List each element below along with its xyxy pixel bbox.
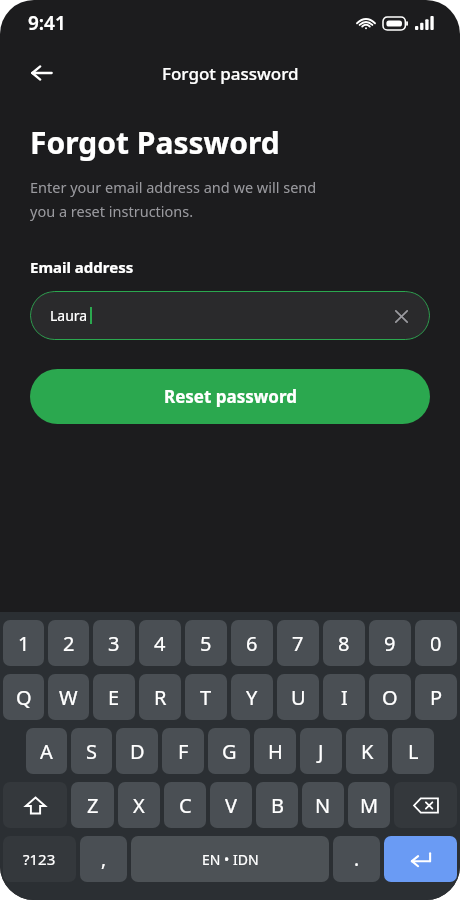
staticText: Y	[246, 684, 258, 711]
button[interactable]: 7	[277, 620, 319, 666]
button[interactable]: E	[93, 674, 135, 720]
staticText: A	[40, 738, 53, 765]
button[interactable]: Back	[20, 51, 64, 95]
button[interactable]: 2	[48, 620, 89, 666]
button[interactable]: Laura	[30, 291, 430, 340]
button[interactable]: H	[254, 728, 296, 774]
staticText: Forgot Password	[30, 122, 280, 163]
button[interactable]: X	[118, 782, 160, 828]
staticText: N	[315, 792, 331, 819]
button[interactable]: 6	[231, 620, 273, 666]
button[interactable]: I	[323, 674, 365, 720]
staticText: B	[271, 792, 284, 819]
staticText: 0	[430, 630, 442, 657]
staticText: ?123	[23, 849, 56, 869]
button[interactable]: J	[300, 728, 342, 774]
staticText: M	[360, 792, 379, 819]
button[interactable]: Shift	[3, 782, 67, 828]
staticText: 6	[246, 630, 258, 657]
staticText: 9:41	[28, 10, 66, 36]
staticText: I	[341, 684, 348, 711]
button[interactable]: D	[116, 728, 158, 774]
button[interactable]: Reset password	[30, 369, 430, 424]
staticText: J	[318, 738, 324, 765]
button[interactable]: T	[185, 674, 227, 720]
button[interactable]: K	[346, 728, 388, 774]
button[interactable]: B	[256, 782, 298, 828]
staticText: T	[200, 684, 212, 711]
staticText: Forgot password	[162, 62, 299, 85]
staticText: Q	[16, 684, 32, 711]
staticText: Z	[87, 792, 99, 819]
staticText: H	[268, 738, 283, 765]
button[interactable]: O	[369, 674, 411, 720]
button[interactable]: ,	[80, 836, 127, 882]
button[interactable]: Y	[231, 674, 273, 720]
button[interactable]: 3	[93, 620, 135, 666]
button[interactable]: U	[277, 674, 319, 720]
button[interactable]: 0	[415, 620, 457, 666]
staticText: 7	[292, 630, 304, 657]
staticText: EN • IDN	[202, 850, 259, 869]
button[interactable]: L	[392, 728, 434, 774]
button[interactable]: A	[26, 728, 67, 774]
staticText: P	[430, 684, 443, 711]
staticText: 1	[18, 630, 30, 657]
button[interactable]: V	[210, 782, 252, 828]
button[interactable]: F	[162, 728, 204, 774]
staticText: Email address	[30, 257, 134, 277]
button[interactable]: ?123	[3, 836, 76, 882]
button[interactable]: G	[208, 728, 250, 774]
staticText: R	[154, 684, 167, 711]
staticText: 8	[338, 630, 350, 657]
button[interactable]: 8	[323, 620, 365, 666]
staticText: G	[222, 738, 237, 765]
staticText: V	[225, 792, 237, 819]
staticText: C	[179, 792, 192, 819]
button[interactable]: M	[348, 782, 390, 828]
staticText: U	[291, 684, 306, 711]
staticText: X	[133, 792, 145, 819]
button[interactable]: Z	[71, 782, 114, 828]
staticText: .	[354, 846, 360, 872]
button[interactable]: N	[302, 782, 344, 828]
button[interactable]: 9	[369, 620, 411, 666]
staticText: S	[86, 738, 97, 765]
staticText: Enter your email address and we will sen…	[30, 177, 317, 221]
button[interactable]: Clear text	[386, 301, 416, 331]
button[interactable]: 1	[3, 620, 44, 666]
button[interactable]: Q	[3, 674, 44, 720]
staticText: Laura	[50, 306, 88, 325]
button[interactable]: P	[415, 674, 457, 720]
button[interactable]: 5	[185, 620, 227, 666]
button[interactable]: 4	[139, 620, 181, 666]
button[interactable]: W	[48, 674, 89, 720]
button[interactable]: R	[139, 674, 181, 720]
button[interactable]: .	[333, 836, 380, 882]
staticText: 9	[384, 630, 396, 657]
staticText: W	[59, 684, 78, 711]
button[interactable]: EN • IDN	[131, 836, 329, 882]
staticText: K	[361, 738, 374, 765]
staticText: 2	[63, 630, 75, 657]
staticText: 4	[154, 630, 166, 657]
staticText: L	[408, 738, 419, 765]
staticText: E	[108, 684, 120, 711]
staticText: Reset password	[164, 385, 297, 408]
button[interactable]: S	[71, 728, 112, 774]
staticText: ,	[101, 846, 107, 872]
staticText: 5	[200, 630, 212, 657]
staticText: F	[178, 738, 189, 765]
staticText: D	[130, 738, 145, 765]
staticText: O	[382, 684, 398, 711]
button[interactable]: Backspace	[394, 782, 457, 828]
staticText: 3	[108, 630, 120, 657]
button[interactable]: C	[164, 782, 206, 828]
button[interactable]: Enter	[384, 836, 457, 882]
